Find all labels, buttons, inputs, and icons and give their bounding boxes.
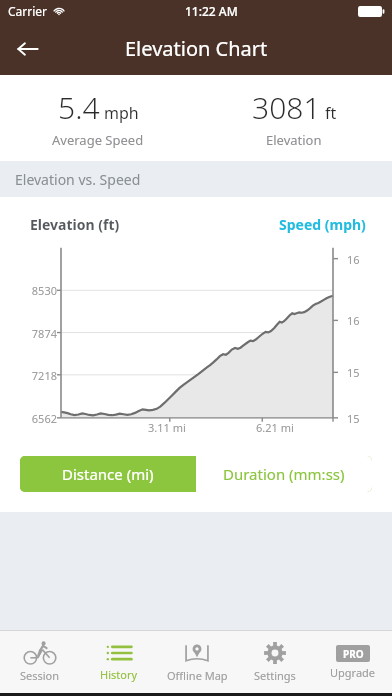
staticText: Average Speed [52, 131, 144, 149]
staticText: 6562 [0, 411, 57, 426]
staticText: Carrier [8, 3, 48, 19]
button[interactable]: Distance (mi) [20, 456, 196, 492]
staticText: Offline Map [167, 668, 228, 683]
staticText: 6.21 mi [256, 420, 294, 434]
staticText: 7218 [0, 368, 57, 383]
staticText: History [100, 667, 138, 682]
staticText: Speed (mph) [279, 215, 366, 234]
staticText: Elevation vs. Speed [15, 170, 141, 189]
staticText: 16 [347, 313, 360, 328]
staticText: Duration (mm:ss) [223, 464, 345, 484]
staticText: Distance (mi) [62, 464, 154, 484]
button[interactable]: Offline Map [158, 631, 236, 693]
staticText: Session [20, 668, 60, 683]
staticText: 15 [347, 365, 360, 380]
button[interactable]: History [79, 631, 158, 693]
staticText: Elevation Chart [125, 35, 268, 62]
staticText: 8530 [0, 283, 57, 298]
staticText: 15 [347, 411, 360, 426]
staticText: Elevation [266, 131, 322, 149]
staticText: 11:22 AM [185, 3, 238, 19]
staticText: PRO [343, 647, 364, 661]
staticText: 16 [347, 252, 360, 267]
staticText: Elevation (ft) [30, 215, 120, 234]
button[interactable]: PRO [314, 631, 392, 693]
staticText: ft [325, 102, 337, 124]
staticText: 3.11 mi [148, 420, 186, 434]
staticText: 3081 [252, 87, 321, 128]
button[interactable]: Back [8, 29, 48, 69]
button[interactable]: Session [0, 631, 79, 693]
button[interactable]: Settings [236, 631, 314, 693]
staticText: Upgrade [330, 665, 376, 680]
staticText: 7874 [0, 326, 57, 341]
staticText: 5.4 [58, 87, 100, 128]
staticText: mph [104, 102, 139, 124]
staticText: Settings [254, 668, 296, 683]
button[interactable]: Duration (mm:ss) [196, 456, 372, 492]
